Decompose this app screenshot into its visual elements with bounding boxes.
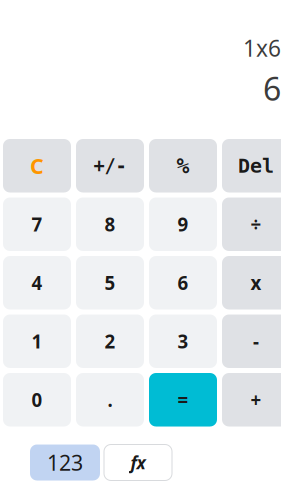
staticText: fx: [130, 451, 145, 474]
button[interactable]: 7: [3, 197, 71, 251]
staticText: 2: [104, 328, 115, 354]
staticText: 6: [177, 270, 188, 295]
button[interactable]: 3: [149, 314, 217, 368]
button[interactable]: -: [222, 314, 281, 368]
button[interactable]: 0: [3, 373, 71, 426]
staticText: 9: [177, 211, 188, 237]
button[interactable]: 2: [76, 314, 144, 368]
staticText: =: [177, 387, 188, 412]
staticText: x: [250, 270, 261, 295]
button[interactable]: 1: [3, 314, 71, 368]
button[interactable]: 4: [3, 256, 71, 309]
button[interactable]: +: [222, 373, 281, 426]
staticText: %: [176, 153, 189, 178]
staticText: 1: [31, 328, 42, 354]
staticText: +: [250, 387, 261, 412]
staticText: 6: [263, 67, 281, 110]
button[interactable]: Del: [222, 139, 281, 192]
button[interactable]: 8: [76, 197, 144, 251]
button[interactable]: x: [222, 256, 281, 309]
button[interactable]: 6: [149, 256, 217, 309]
staticText: 3: [177, 328, 188, 354]
button[interactable]: ÷: [222, 197, 281, 251]
staticText: 5: [104, 270, 115, 295]
staticText: Del: [238, 154, 274, 177]
staticText: .: [107, 387, 112, 412]
staticText: 0: [31, 387, 42, 412]
button[interactable]: %: [149, 139, 217, 192]
button[interactable]: +/-: [76, 139, 144, 192]
staticText: 7: [31, 211, 42, 237]
button[interactable]: =: [149, 373, 217, 426]
staticText: -: [253, 328, 259, 354]
button[interactable]: 5: [76, 256, 144, 309]
staticText: 8: [104, 211, 115, 237]
staticText: ÷: [250, 211, 261, 237]
button[interactable]: fx: [104, 444, 172, 480]
staticText: 4: [31, 270, 42, 295]
staticText: C: [30, 151, 44, 180]
button[interactable]: C: [3, 139, 71, 192]
button[interactable]: 123: [30, 444, 100, 480]
button[interactable]: .: [76, 373, 144, 426]
staticText: 1x6: [243, 33, 281, 63]
button[interactable]: 9: [149, 197, 217, 251]
staticText: 123: [47, 448, 83, 477]
staticText: +/-: [93, 155, 126, 177]
